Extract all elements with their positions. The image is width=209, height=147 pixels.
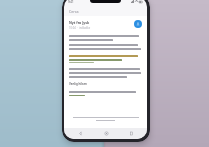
- button[interactable]: Oversigt: [121, 128, 141, 139]
- staticText: 9:41: [68, 0, 74, 4]
- staticText: Cerca: [69, 9, 79, 14]
- button[interactable]: Hjem: [96, 128, 116, 139]
- staticText: Nyt fra Jysk: [69, 20, 90, 25]
- button[interactable]: Tilbage: [70, 128, 90, 139]
- button[interactable]: [69, 95, 85, 96]
- staticText: 10:04 · indbakke: [69, 26, 91, 30]
- staticText: Venlig hilsen: [69, 82, 87, 86]
- button[interactable]: Afsender: [134, 20, 142, 28]
- button[interactable]: Cerca: [64, 6, 147, 16]
